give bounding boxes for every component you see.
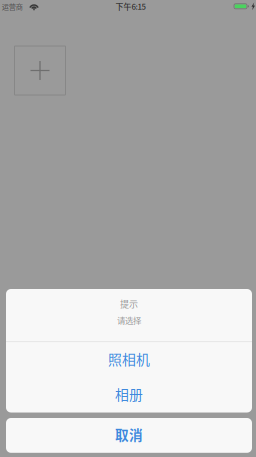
button[interactable]: 相册 bbox=[6, 377, 252, 412]
button[interactable]: Add photo bbox=[14, 46, 65, 95]
staticText: 照相机 bbox=[108, 349, 150, 369]
button[interactable]: 照相机 bbox=[6, 342, 252, 377]
staticText: 运营商 bbox=[2, 1, 23, 11]
staticText: 提示 bbox=[120, 297, 138, 310]
staticText: 请选择 bbox=[117, 314, 141, 326]
button[interactable]: 取消 bbox=[6, 418, 252, 453]
staticText: 相册 bbox=[115, 384, 143, 404]
staticText: 下午6:15 bbox=[115, 1, 145, 12]
staticText: 取消 bbox=[115, 425, 143, 444]
